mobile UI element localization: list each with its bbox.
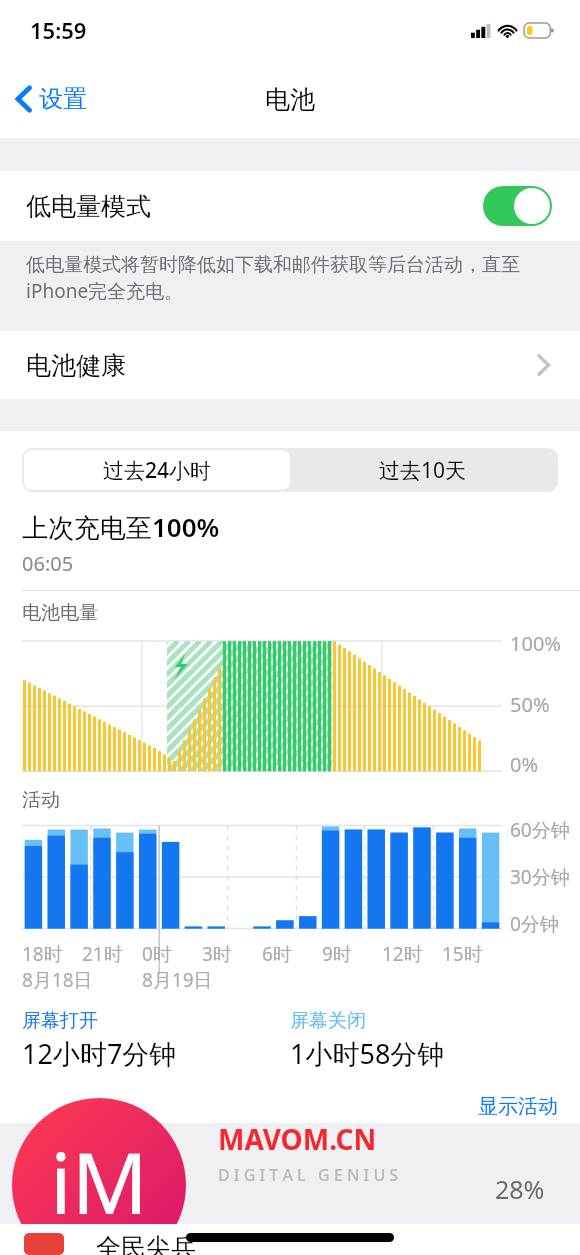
button[interactable]: 电池健康 — [0, 331, 580, 399]
staticText: 12时 — [382, 941, 423, 967]
staticText: iM — [50, 1124, 148, 1238]
staticText: 8月18日 — [22, 967, 93, 993]
staticText: 电池健康 — [26, 350, 126, 381]
staticText: 电池电量 — [22, 601, 98, 625]
staticText: 15:59 — [30, 15, 87, 45]
staticText: 06:05 — [22, 550, 74, 577]
staticText: D I G I T A L G E N I U S — [218, 1164, 399, 1186]
staticText: 过去10天 — [379, 456, 467, 485]
staticText: 活动 — [22, 788, 60, 812]
button[interactable]: 低电量模式开关 — [483, 186, 552, 226]
staticText: 100% — [510, 630, 561, 657]
staticText: 低电量模式将暂时降低如下载和邮件获取等后台活动，直至 iPhone完全充电。 — [26, 253, 520, 304]
staticText: 屏幕打开 — [22, 1009, 98, 1033]
staticText: 0% — [510, 751, 539, 778]
button[interactable]: 设置 — [0, 78, 99, 120]
staticText: 28% — [495, 1172, 545, 1206]
staticText: 18时 — [22, 941, 63, 967]
button[interactable]: 低电量模式 — [0, 171, 580, 241]
button[interactable]: 过去24小时 — [24, 450, 290, 490]
staticText: 3时 — [202, 941, 232, 967]
button[interactable]: 显示活动 — [478, 1090, 580, 1123]
staticText: 6时 — [262, 941, 292, 967]
staticText: 显示活动 — [478, 1094, 558, 1119]
staticText: MAVOM.CN — [218, 1120, 377, 1158]
staticText: 1小时58分钟 — [290, 1035, 445, 1072]
staticText: 设置 — [39, 84, 87, 114]
staticText: 过去24小时 — [103, 456, 212, 485]
staticText: 0时 — [142, 941, 172, 967]
staticText: 低电量模式 — [26, 191, 151, 222]
staticText: 电池 — [265, 84, 315, 115]
staticText: 0分钟 — [510, 911, 559, 937]
staticText: 屏幕关闭 — [290, 1009, 366, 1033]
staticText: 8月19日 — [142, 967, 213, 993]
staticText: 21时 — [82, 941, 123, 967]
staticText: 60分钟 — [510, 817, 570, 843]
staticText: 9时 — [322, 941, 352, 967]
staticText: 50% — [510, 691, 550, 718]
staticText: 30分钟 — [510, 864, 570, 890]
staticText: 全民尖兵 — [96, 1232, 196, 1255]
staticText: 上次充电至100% — [22, 509, 220, 545]
staticText: 12小时7分钟 — [22, 1035, 177, 1072]
button[interactable]: 过去10天 — [290, 450, 556, 490]
staticText: 15时 — [442, 941, 483, 967]
